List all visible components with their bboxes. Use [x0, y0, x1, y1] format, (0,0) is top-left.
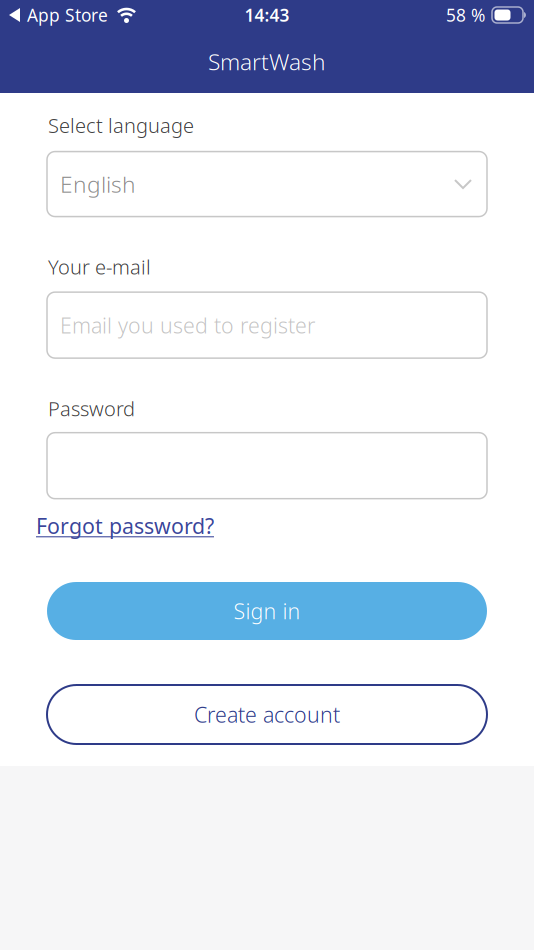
button[interactable]: Sign in [0, 582, 534, 640]
button[interactable]: App Store [9, 3, 138, 26]
staticText: 58 % [446, 3, 485, 26]
staticText: Your e-mail [48, 254, 151, 280]
staticText: Select language [48, 112, 194, 139]
button[interactable]: Forgot password? [0, 512, 214, 540]
staticText: Sign in [233, 597, 300, 625]
button[interactable]: Create account [0, 685, 534, 744]
staticText: Forgot password? [36, 512, 214, 540]
button[interactable]: Email you used to register [0, 292, 534, 358]
button[interactable] [0, 433, 534, 499]
staticText: English [60, 169, 136, 199]
staticText: Email you used to register [60, 311, 315, 339]
staticText: 14:43 [244, 3, 289, 26]
staticText: App Store [27, 3, 108, 26]
staticText: SmartWash [208, 46, 326, 76]
staticText: Create account [194, 700, 340, 729]
button[interactable]: English [0, 152, 534, 217]
staticText: Password [48, 395, 135, 422]
